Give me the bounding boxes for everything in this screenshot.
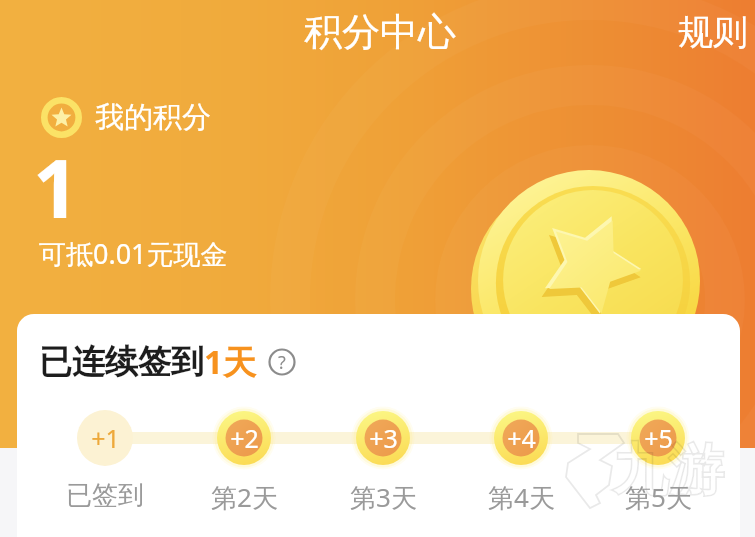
staticText: 已签到 [66,479,144,512]
staticText: 我的积分 [95,99,211,136]
staticText: 1天 [204,339,256,384]
button[interactable]: +3 [335,406,431,502]
staticText: 第3天 [350,479,417,515]
staticText: ? [278,350,286,375]
button[interactable]: 签到规则说明 [268,348,296,376]
button[interactable]: +4 [473,406,569,502]
button[interactable]: 积分中心 [304,8,456,56]
staticText: 第4天 [488,479,555,515]
button[interactable]: +1 [57,406,153,502]
staticText: 1 [33,132,79,241]
staticText: 积分中心 [304,8,456,56]
staticText: +2 [230,421,259,455]
staticText: +4 [507,421,536,455]
staticText: 规则 [678,10,748,54]
staticText: 第2天 [211,479,278,515]
staticText: 第5天 [625,479,692,515]
button[interactable]: +2 [196,406,292,502]
button[interactable]: 规则 [678,10,748,54]
button[interactable]: +5 [610,406,706,502]
staticText: +5 [644,421,673,455]
staticText: 已连续签到 [39,341,204,383]
staticText: 可抵0.01元现金 [39,235,228,272]
staticText: +1 [91,421,120,455]
staticText: +3 [369,421,398,455]
